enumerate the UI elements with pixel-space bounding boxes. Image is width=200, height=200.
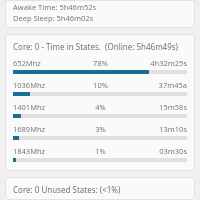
staticText: 1% [78, 146, 123, 156]
button[interactable]: Core: 0 - Time in States. (Online: 5h46m… [5, 34, 195, 171]
button[interactable]: Core: 0 Unused States: (<1%) [5, 177, 195, 200]
staticText: 4% [78, 102, 123, 112]
button[interactable]: 1036Mhz [5, 80, 195, 96]
staticText: 10% [78, 80, 123, 90]
button[interactable]: 1401Mhz [5, 102, 195, 118]
button[interactable]: 1689Mhz [5, 124, 195, 140]
staticText: 1689Mhz [13, 124, 78, 134]
staticText: 1843Mhz [13, 146, 78, 156]
staticText: 15m58s [123, 102, 187, 112]
staticText: 03m30s [123, 146, 187, 156]
staticText: 3% [78, 124, 123, 134]
staticText: 13m10s [123, 124, 187, 134]
staticText: 4h32m25s [123, 58, 187, 68]
staticText: Core: 0 Unused States: (<1%) [13, 184, 121, 195]
staticText: Deep Sleep: 5h46m02s [13, 13, 94, 23]
staticText: 652Mhz [13, 58, 78, 68]
staticText: 37m45a [123, 80, 187, 90]
staticText: Core: 0 - Time in States. (Online: 5h46m… [13, 41, 178, 52]
button[interactable]: Awake Time: 5h46m52s [5, 0, 195, 28]
staticText: 78% [78, 58, 123, 68]
button[interactable]: 652Mhz [5, 58, 195, 74]
staticText: 1401Mhz [13, 102, 78, 112]
staticText: Awake Time: 5h46m52s [13, 2, 97, 12]
button[interactable]: 1843Mhz [5, 146, 195, 162]
staticText: 1036Mhz [13, 80, 78, 90]
